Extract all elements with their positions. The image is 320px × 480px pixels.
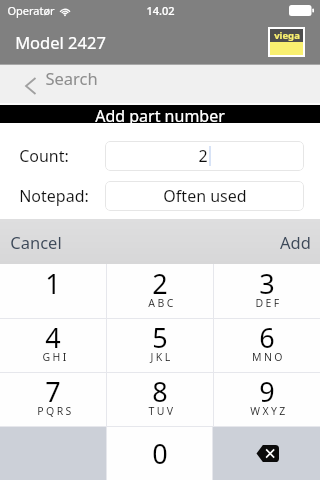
- staticText: 14.02: [146, 3, 175, 18]
- staticText: Add part number: [95, 105, 225, 123]
- staticText: Search: [45, 67, 98, 89]
- staticText: GHI: [42, 350, 69, 364]
- button[interactable]: 1: [0, 264, 106, 318]
- button[interactable]: Add: [271, 219, 320, 264]
- button[interactable]: Often used: [105, 181, 304, 211]
- button[interactable]: 6: [213, 318, 320, 372]
- staticText: 4: [45, 319, 61, 356]
- staticText: DEF: [255, 296, 282, 310]
- staticText: 5: [152, 319, 168, 356]
- staticText: MNO: [252, 350, 285, 364]
- staticText: Often used: [163, 185, 247, 207]
- staticText: Model 2427: [15, 31, 106, 53]
- staticText: 3: [259, 265, 275, 302]
- other: Back: [25, 77, 36, 95]
- button[interactable]: [0, 426, 106, 480]
- button[interactable]: 4: [0, 318, 106, 372]
- staticText: 7: [45, 373, 61, 410]
- button[interactable]: Cancel: [0, 219, 72, 264]
- staticText: Operatør: [7, 3, 55, 18]
- staticText: JKL: [150, 350, 173, 364]
- staticText: 8: [152, 373, 168, 410]
- staticText: Notepad:: [19, 185, 89, 207]
- button[interactable]: 0: [106, 426, 213, 480]
- button[interactable]: 5: [106, 318, 213, 372]
- staticText: ABC: [148, 296, 176, 310]
- button[interactable]: viega logo: [268, 27, 305, 57]
- staticText: 2: [198, 145, 208, 167]
- button[interactable]: 2: [106, 264, 213, 318]
- staticText: 1: [45, 265, 61, 302]
- staticText: Count:: [19, 145, 69, 167]
- button[interactable]: Backspace: [213, 426, 320, 480]
- button[interactable]: 2: [105, 141, 304, 171]
- button[interactable]: 7: [0, 372, 106, 426]
- button[interactable]: Back: [0, 64, 320, 105]
- staticText: 6: [259, 319, 275, 356]
- staticText: 0: [152, 435, 168, 472]
- staticText: Add: [280, 231, 311, 253]
- staticText: PQRS: [37, 404, 74, 418]
- staticText: 9: [259, 373, 275, 410]
- button[interactable]: 8: [106, 372, 213, 426]
- staticText: TUV: [148, 404, 176, 418]
- staticText: Cancel: [10, 231, 62, 253]
- staticText: 2: [152, 265, 168, 302]
- button[interactable]: 9: [213, 372, 320, 426]
- staticText: WXYZ: [250, 404, 288, 418]
- button[interactable]: 3: [213, 264, 320, 318]
- staticText: viega: [274, 29, 300, 42]
